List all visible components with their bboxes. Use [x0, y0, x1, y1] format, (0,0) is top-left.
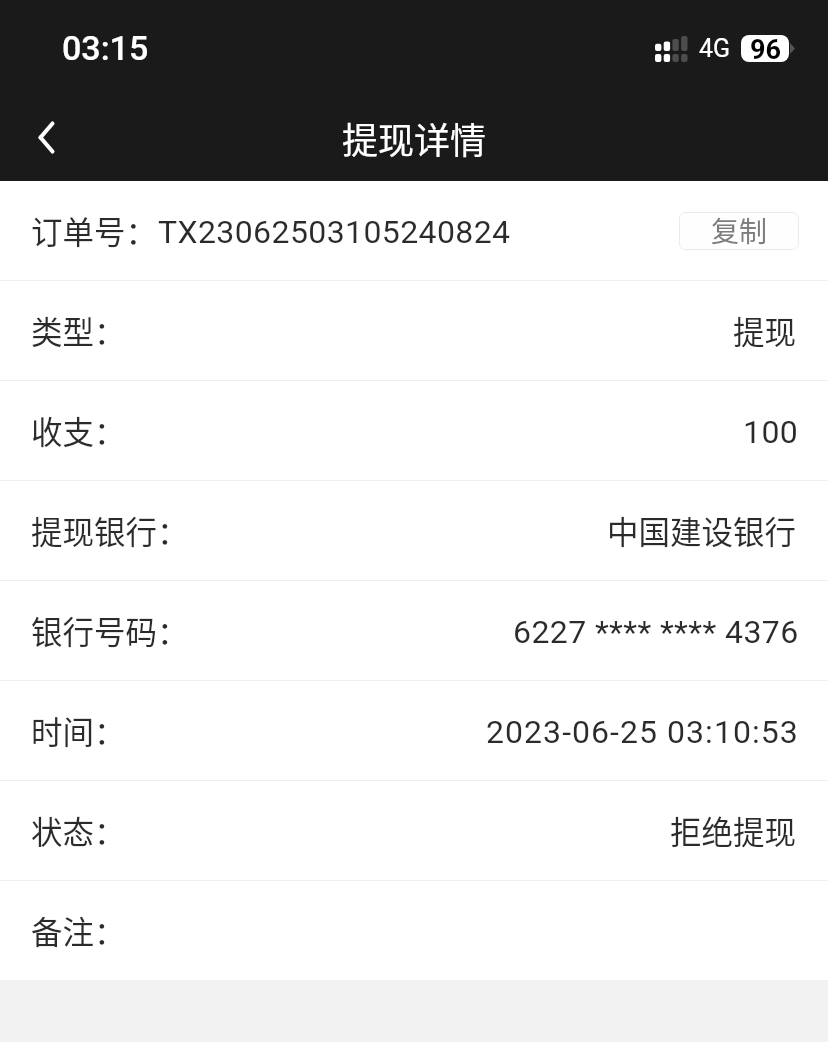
staticText: 中国建设银行 [607, 507, 797, 553]
staticText: 96 [750, 35, 781, 61]
button[interactable]: 备注： [0, 881, 828, 980]
staticText: 2023-06-25 03:10:53 [486, 713, 799, 751]
staticText: 提现详情 [342, 112, 487, 164]
staticText: 收支： [31, 407, 126, 453]
staticText: 银行号码： [31, 607, 189, 653]
button[interactable]: 时间： [0, 681, 828, 780]
button[interactable]: 银行号码： [0, 581, 828, 680]
staticText: 类型： [31, 307, 126, 353]
staticText: 4G [699, 34, 731, 63]
staticText: 时间： [31, 707, 126, 753]
staticText: 订单号： [31, 207, 158, 253]
staticText: 6227 **** **** 4376 [513, 613, 799, 651]
button[interactable]: 订单号： [0, 181, 828, 280]
staticText: 提现 [733, 307, 797, 353]
button[interactable]: 类型： [0, 281, 828, 380]
button[interactable]: 复制 [679, 212, 799, 250]
staticText: 提现银行： [31, 507, 189, 553]
button[interactable]: 收支： [0, 381, 828, 480]
staticText: 复制 [711, 212, 768, 248]
staticText: TX23062503105240824 [158, 213, 511, 251]
button[interactable]: 提现银行： [0, 481, 828, 580]
button[interactable]: Back [0, 94, 92, 180]
staticText: 100 [743, 413, 799, 451]
staticText: 备注： [31, 907, 126, 953]
staticText: 状态： [31, 807, 126, 853]
button[interactable]: 状态： [0, 781, 828, 880]
staticText: 拒绝提现 [670, 807, 797, 853]
staticText: 03:15 [62, 28, 149, 68]
